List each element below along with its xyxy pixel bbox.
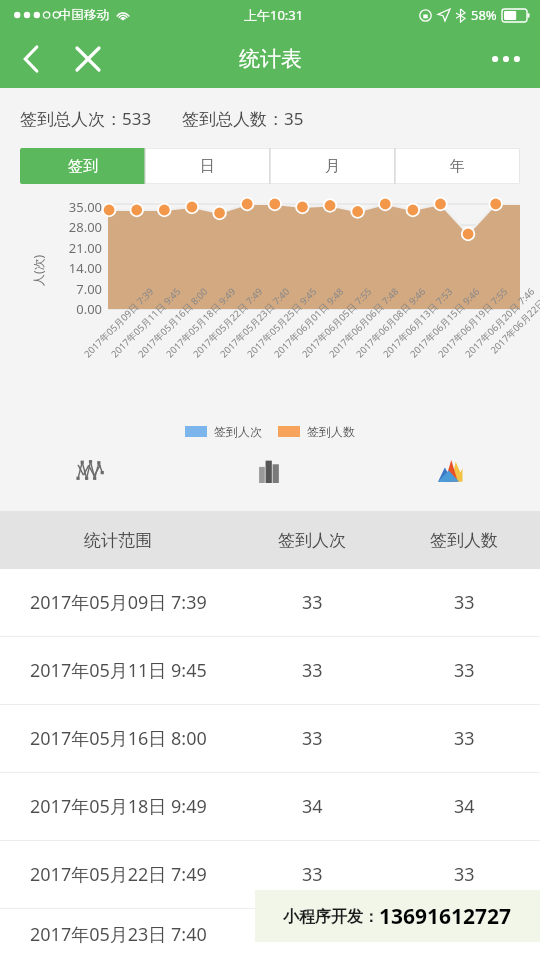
staticText: 2017年06月06日 7:48 (326, 285, 402, 360)
button[interactable]: Area chart (360, 443, 540, 497)
staticText: 28.00 (42, 218, 102, 236)
staticText: 2017年06月22日 9: (488, 289, 540, 356)
staticText: 2017年06月19日 7:55 (435, 285, 511, 360)
staticText: 2017年05月11日 9:45 (108, 285, 184, 360)
staticText: 2017年06月15日 9:46 (407, 285, 483, 360)
staticText: 签到总人数：35 (182, 107, 304, 130)
button[interactable]: 日 (145, 148, 270, 184)
staticText: 2017年05月25日 9:45 (244, 285, 320, 360)
button[interactable]: Back (8, 35, 56, 83)
staticText: 2017年05月23日 7:40 (30, 922, 207, 947)
staticText: 35.00 (42, 198, 102, 216)
staticText: 33 (302, 658, 323, 683)
staticText: 14.00 (42, 259, 102, 277)
staticText: 年 (450, 157, 465, 176)
staticText: 统计表 (239, 46, 302, 72)
staticText: 58% (471, 6, 497, 24)
staticText: 2017年05月09日 7:39 (81, 285, 157, 360)
staticText: 签到人数 (307, 424, 355, 439)
staticText: 2017年06月05日 7:55 (299, 285, 375, 360)
staticText: 2017年05月23日 7:40 (217, 285, 293, 360)
staticText: 2017年06月08日 9:46 (353, 285, 429, 360)
staticText: 签到总人次：533 (20, 107, 152, 130)
staticText: 2017年05月16日 8:00 (135, 285, 211, 360)
staticText: 33 (302, 726, 323, 751)
staticText: 签到人次 (278, 530, 346, 551)
button[interactable]: Close (64, 35, 112, 83)
button[interactable]: 2017年05月18日 9:49 (0, 773, 540, 840)
button[interactable]: 签到 (20, 148, 145, 184)
staticText: 签到人数 (430, 530, 498, 551)
staticText: 2017年05月18日 9:49 (30, 794, 207, 819)
button[interactable]: 2017年05月23日 7:40 (0, 909, 540, 960)
staticText: 33 (454, 726, 475, 751)
staticText: 上午10:31 (244, 6, 304, 24)
staticText: 中国移动 (59, 7, 109, 23)
staticText: 33 (302, 862, 323, 887)
staticText: 月 (325, 157, 340, 176)
staticText: 小程序开发： (283, 907, 379, 927)
staticText: 签到人次 (214, 424, 262, 439)
staticText: 2017年06月01日 9:48 (271, 285, 347, 360)
staticText: 33 (454, 922, 475, 947)
staticText: 2017年05月09日 7:39 (30, 590, 207, 615)
staticText: 33 (302, 922, 323, 947)
button[interactable]: 2017年05月11日 9:45 (0, 637, 540, 704)
staticText: 2017年05月18日 9:49 (163, 285, 239, 360)
button[interactable]: Bar chart (180, 443, 360, 497)
staticText: 33 (454, 862, 475, 887)
staticText: 34 (302, 794, 323, 819)
staticText: 33 (454, 590, 475, 615)
staticText: 2017年05月11日 9:45 (30, 658, 207, 683)
staticText: 0.00 (42, 300, 102, 318)
button[interactable]: More options (482, 35, 530, 83)
staticText: 2017年06月20日 7:46 (462, 285, 538, 360)
staticText: 13691612727 (379, 902, 512, 931)
staticText: 2017年05月22日 7:49 (30, 862, 207, 887)
staticText: 人(次) (30, 254, 46, 286)
button[interactable]: 2017年05月16日 8:00 (0, 705, 540, 772)
button[interactable]: 2017年05月09日 7:39 (0, 569, 540, 636)
staticText: 33 (454, 658, 475, 683)
staticText: 34 (454, 794, 475, 819)
button[interactable]: 小程序开发： (255, 890, 540, 942)
staticText: 2017年06月13日 7:53 (380, 285, 456, 360)
staticText: 21.00 (42, 239, 102, 257)
staticText: 2017年05月22日 7:49 (190, 285, 266, 360)
button[interactable]: 月 (270, 148, 395, 184)
button[interactable]: Line chart (0, 443, 180, 497)
staticText: 统计范围 (84, 530, 152, 551)
staticText: 7.00 (42, 280, 102, 298)
button[interactable]: 2017年05月22日 7:49 (0, 841, 540, 908)
staticText: 33 (302, 590, 323, 615)
staticText: 日 (200, 157, 215, 176)
button[interactable]: 年 (395, 148, 520, 184)
staticText: 签到 (68, 157, 98, 176)
staticText: 2017年05月16日 8:00 (30, 726, 207, 751)
